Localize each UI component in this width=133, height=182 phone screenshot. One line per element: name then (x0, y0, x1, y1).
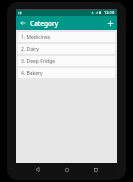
staticText: 2. Dairy (21, 46, 39, 53)
staticText: 4. Bakery (21, 70, 43, 77)
button[interactable]: 1. Medicines (18, 32, 115, 42)
button[interactable]: Add category (103, 16, 117, 30)
button[interactable]: Recent apps (89, 163, 102, 176)
button[interactable]: Back (16, 16, 30, 30)
button[interactable]: 4. Bakery (18, 68, 115, 78)
staticText: Category (30, 19, 59, 28)
staticText: 3. Deep Fridge (21, 58, 56, 65)
staticText: 1. Medicines (21, 34, 51, 41)
button[interactable]: 3. Deep Fridge (18, 56, 115, 66)
button[interactable]: Home (60, 163, 73, 176)
button[interactable]: 2. Dairy (18, 44, 115, 54)
button[interactable]: Back (31, 163, 44, 176)
staticText: 12:10 (104, 10, 115, 15)
